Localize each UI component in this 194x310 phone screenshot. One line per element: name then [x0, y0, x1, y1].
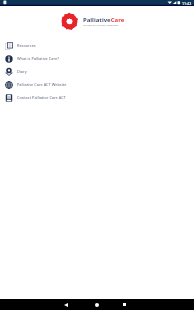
staticText: Diary: [17, 69, 27, 74]
button[interactable]: Diary: [0, 65, 194, 78]
button[interactable]: Resources: [0, 39, 194, 52]
button[interactable]: What is Palliative Care?: [0, 52, 194, 65]
staticText: Resources: [17, 43, 36, 48]
button[interactable]: Contact Palliative Care ACT: [0, 91, 194, 104]
button[interactable]: Recent apps: [118, 299, 131, 310]
button[interactable]: Home: [76, 299, 118, 310]
staticText: Contact Palliative Care ACT: [17, 95, 66, 100]
staticText: What is Palliative Care?: [17, 56, 59, 61]
staticText: PalliativeCare: [83, 16, 125, 24]
staticText: AUSTRALIAN CAPITAL TERRITORY: [83, 24, 119, 27]
staticText: 11:42: [182, 1, 192, 6]
staticText: Palliative Care ACT Website: [17, 82, 67, 87]
button[interactable]: Palliative Care ACT Website: [0, 78, 194, 91]
button[interactable]: Back: [55, 299, 76, 310]
